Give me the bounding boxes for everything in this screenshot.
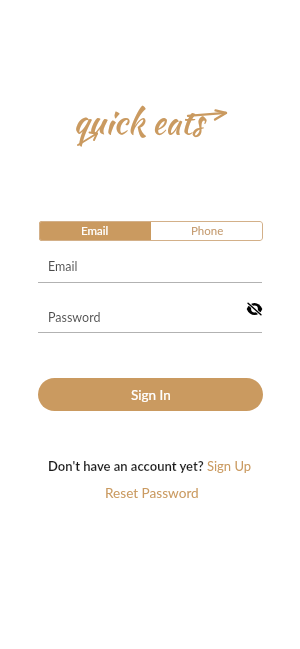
button[interactable]: Email <box>39 221 151 241</box>
button[interactable]: Password <box>38 305 262 332</box>
staticText: Sign In <box>131 387 171 403</box>
staticText: Email <box>81 224 109 238</box>
button[interactable]: Sign In <box>38 378 263 411</box>
staticText: Email <box>48 259 78 274</box>
staticText: Don't have an account yet? <box>48 458 207 474</box>
staticText: Sign Up <box>207 458 252 474</box>
staticText: quick <box>73 97 145 146</box>
button[interactable]: Sign Up <box>207 458 252 474</box>
button[interactable]: Reset Password <box>105 485 199 501</box>
staticText: Phone <box>191 224 224 238</box>
button[interactable]: Show password <box>244 299 264 319</box>
staticText: eats <box>152 98 204 146</box>
staticText: Password <box>48 310 101 325</box>
staticText: Reset Password <box>105 485 199 501</box>
button[interactable]: Phone <box>151 221 263 241</box>
button[interactable]: Email <box>38 254 262 281</box>
